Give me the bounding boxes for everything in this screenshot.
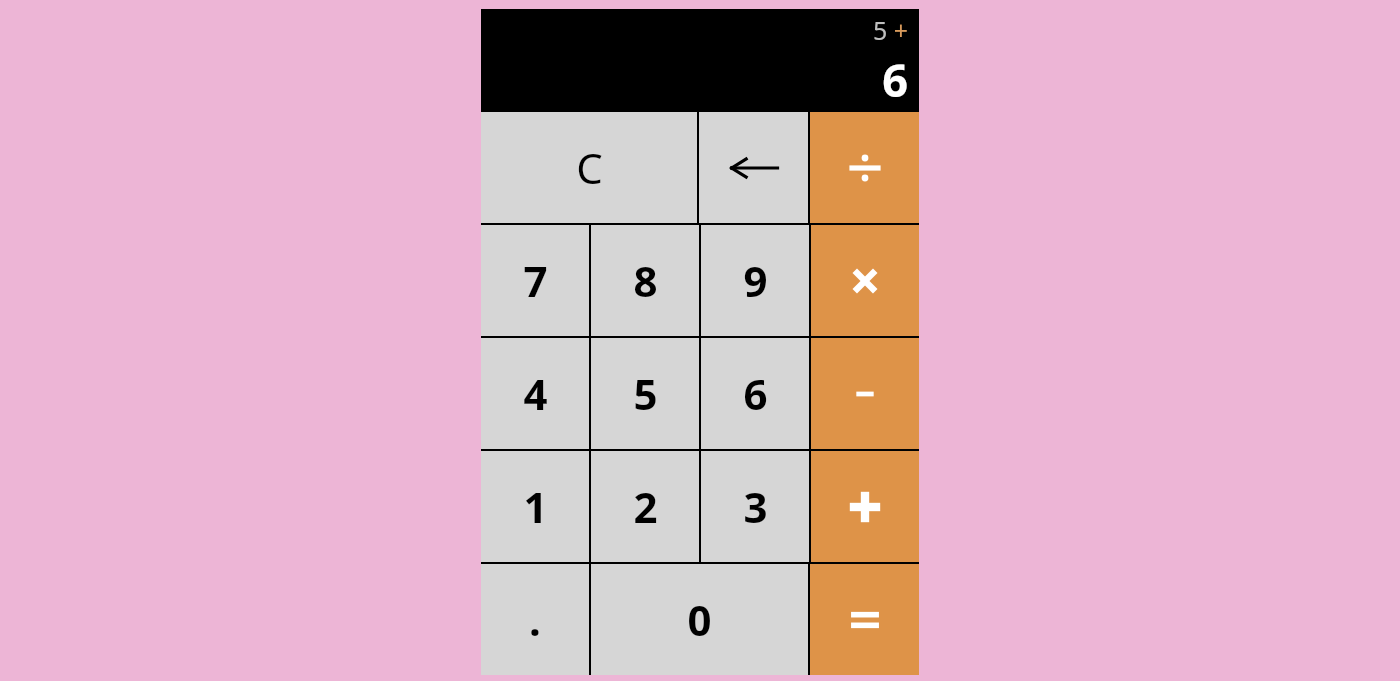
button[interactable]: Decimal point [481, 564, 589, 675]
staticText: 2 [633, 478, 658, 535]
button[interactable]: Add [811, 451, 919, 562]
staticText: 6 [743, 365, 768, 422]
button[interactable]: Divide [810, 112, 919, 223]
button[interactable]: Clear [481, 112, 697, 223]
staticText: 6 [882, 49, 908, 110]
staticText: 4 [523, 365, 548, 422]
staticText: . [529, 591, 541, 648]
button[interactable]: 5 [591, 338, 699, 449]
staticText: 1 [523, 478, 548, 535]
button[interactable]: Subtract [811, 338, 919, 449]
button[interactable]: Equals [810, 564, 919, 675]
button[interactable]: 4 [481, 338, 589, 449]
button[interactable]: 3 [701, 451, 809, 562]
button[interactable]: Multiply [811, 225, 919, 336]
button[interactable]: 1 [481, 451, 589, 562]
staticText: 8 [633, 252, 658, 309]
button[interactable]: 9 [701, 225, 809, 336]
staticText: C [576, 139, 603, 196]
button[interactable]: 2 [591, 451, 699, 562]
staticText: 0 [687, 591, 712, 648]
staticText: 7 [523, 252, 548, 309]
button[interactable]: 7 [481, 225, 589, 336]
button[interactable]: Zero [591, 564, 808, 675]
button[interactable]: 8 [591, 225, 699, 336]
button[interactable]: 6 [701, 338, 809, 449]
staticText: 3 [743, 478, 768, 535]
staticText: 9 [743, 252, 768, 309]
staticText: 5 + [872, 13, 908, 47]
button[interactable]: Backspace [699, 112, 808, 223]
staticText: 5 [633, 365, 658, 422]
